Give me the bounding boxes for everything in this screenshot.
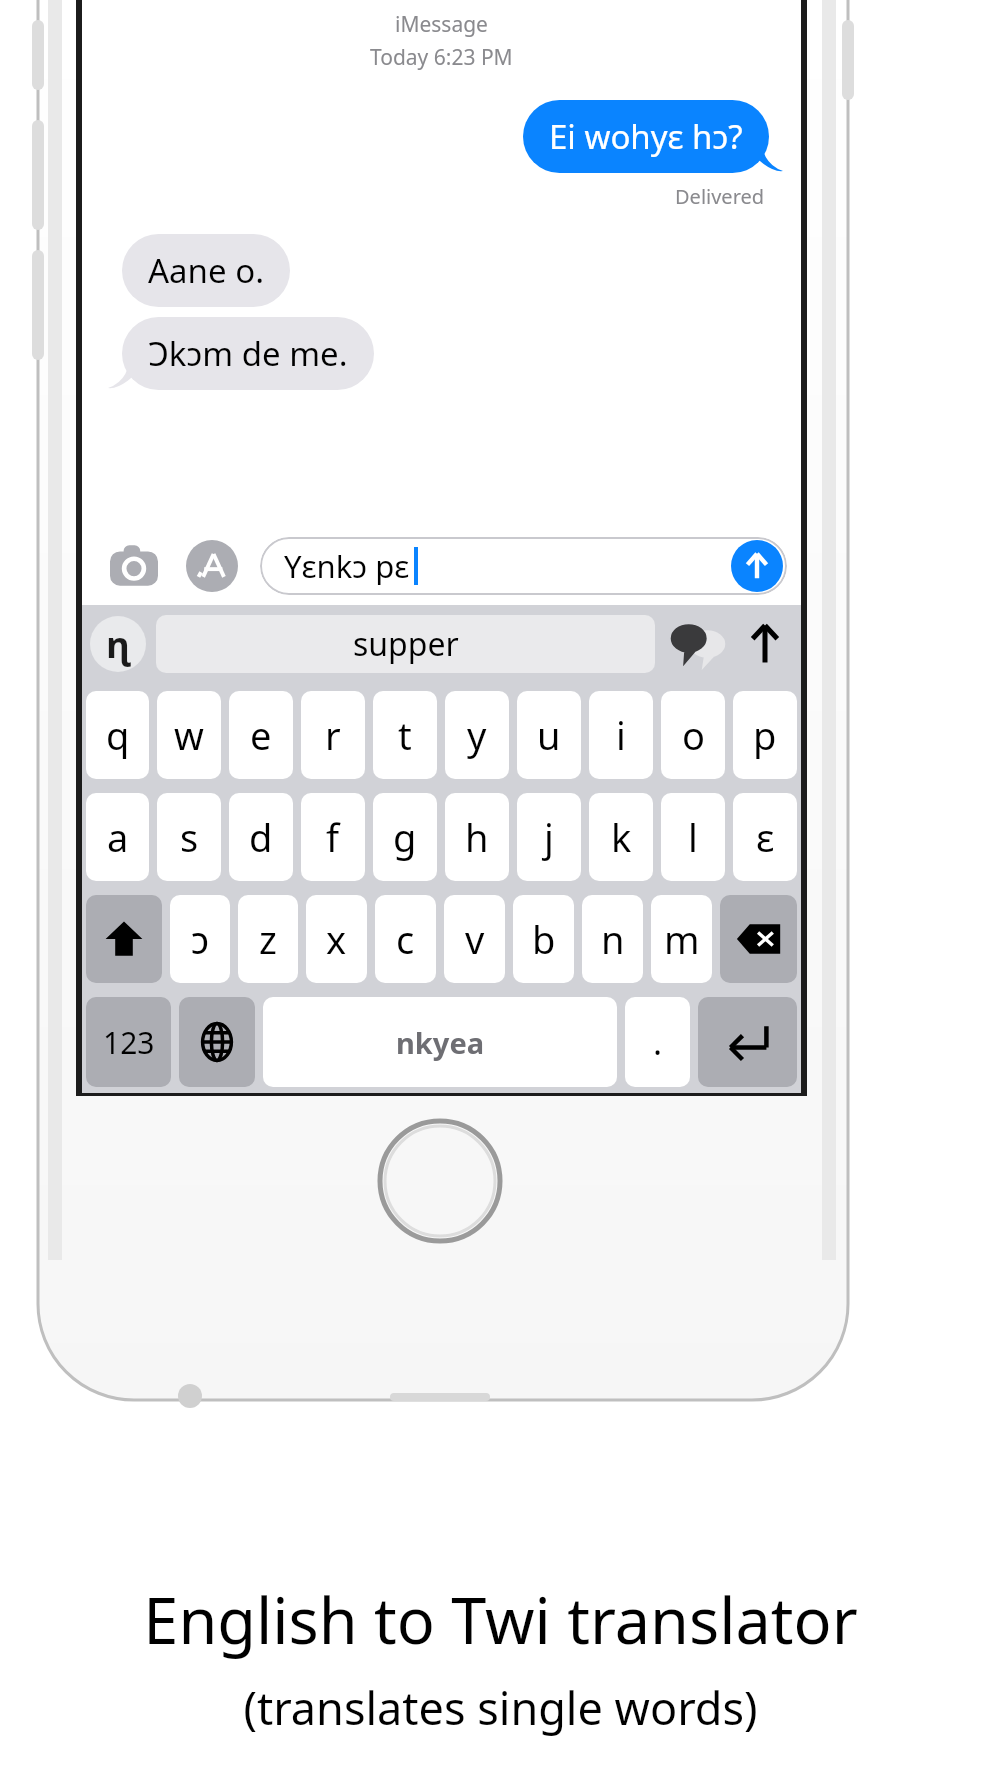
button[interactable]: Backspace bbox=[720, 895, 797, 983]
staticText: Ei wohyɛ hɔ? bbox=[549, 114, 743, 159]
button[interactable]: z bbox=[238, 895, 298, 983]
button[interactable]: l bbox=[661, 793, 725, 881]
staticText: Yɛnkɔ pɛ bbox=[284, 545, 410, 587]
button[interactable]: 123 bbox=[86, 997, 171, 1087]
button[interactable]: Switch keyboard bbox=[179, 997, 255, 1087]
button[interactable]: y bbox=[445, 691, 509, 779]
button[interactable]: v bbox=[444, 895, 505, 983]
button[interactable]: Ɔkɔm de me. bbox=[122, 317, 374, 390]
staticText: p bbox=[753, 709, 777, 761]
staticText: f bbox=[326, 811, 340, 863]
staticText: ɳ bbox=[106, 620, 130, 669]
staticText: (translates single words) bbox=[243, 1677, 758, 1738]
staticText: English to Twi translator bbox=[143, 1577, 858, 1663]
staticText: supper bbox=[353, 622, 459, 666]
staticText: a bbox=[107, 811, 129, 863]
staticText: n bbox=[601, 913, 625, 965]
staticText: z bbox=[259, 913, 277, 965]
staticText: Today 6:23 PM bbox=[370, 43, 513, 72]
button[interactable]: nkyea bbox=[263, 997, 617, 1087]
button[interactable]: Aane o. bbox=[122, 234, 290, 307]
staticText: iMessage bbox=[395, 10, 488, 39]
staticText: w bbox=[174, 709, 204, 761]
staticText: Delivered bbox=[675, 183, 765, 210]
button[interactable]: supper bbox=[156, 615, 655, 673]
button[interactable]: Return bbox=[698, 997, 797, 1087]
staticText: k bbox=[611, 811, 632, 863]
button[interactable]: u bbox=[517, 691, 581, 779]
staticText: l bbox=[688, 811, 698, 863]
staticText: g bbox=[393, 811, 417, 863]
button[interactable]: x bbox=[306, 895, 367, 983]
button[interactable]: Shift bbox=[86, 895, 162, 983]
staticText: Ɔkɔm de me. bbox=[148, 331, 348, 376]
staticText: b bbox=[532, 913, 556, 965]
button[interactable]: ɔ bbox=[170, 895, 230, 983]
button[interactable]: Camera bbox=[108, 540, 160, 592]
button[interactable]: r bbox=[301, 691, 365, 779]
button[interactable]: Ei wohyɛ hɔ? bbox=[523, 100, 769, 173]
button[interactable]: a bbox=[86, 793, 149, 881]
staticText: i bbox=[616, 709, 626, 761]
button[interactable]: . bbox=[625, 997, 690, 1087]
staticText: o bbox=[682, 709, 705, 761]
staticText: e bbox=[250, 709, 272, 761]
staticText: m bbox=[664, 913, 700, 965]
staticText: . bbox=[653, 1019, 663, 1065]
button[interactable]: o bbox=[661, 691, 725, 779]
staticText: d bbox=[249, 811, 273, 863]
staticText: y bbox=[467, 709, 487, 761]
staticText: r bbox=[325, 709, 341, 761]
staticText: ɔ bbox=[191, 913, 210, 965]
staticText: ɛ bbox=[756, 811, 775, 863]
staticText: t bbox=[398, 709, 412, 761]
staticText: nkyea bbox=[396, 1023, 485, 1062]
button[interactable]: f bbox=[301, 793, 365, 881]
button[interactable]: d bbox=[229, 793, 293, 881]
button[interactable]: w bbox=[157, 691, 221, 779]
staticText: v bbox=[465, 913, 485, 965]
button[interactable]: Expand bbox=[737, 616, 793, 672]
button[interactable]: h bbox=[445, 793, 509, 881]
button[interactable]: c bbox=[375, 895, 436, 983]
button[interactable]: j bbox=[517, 793, 581, 881]
button[interactable]: Send bbox=[731, 540, 783, 592]
button[interactable]: e bbox=[229, 691, 293, 779]
button[interactable]: s bbox=[157, 793, 221, 881]
staticText: Aane o. bbox=[148, 248, 264, 293]
button[interactable]: p bbox=[733, 691, 797, 779]
staticText: j bbox=[544, 811, 554, 863]
button[interactable]: b bbox=[513, 895, 574, 983]
button[interactable]: n bbox=[582, 895, 643, 983]
button[interactable]: m bbox=[651, 895, 712, 983]
staticText: q bbox=[106, 709, 130, 761]
button[interactable]: t bbox=[373, 691, 437, 779]
button[interactable]: Keyboard logo bbox=[90, 616, 146, 672]
button[interactable]: App Store bbox=[186, 540, 238, 592]
button[interactable]: k bbox=[589, 793, 653, 881]
button[interactable]: i bbox=[589, 691, 653, 779]
staticText: x bbox=[326, 913, 347, 965]
staticText: h bbox=[465, 811, 489, 863]
staticText: s bbox=[180, 811, 199, 863]
staticText: u bbox=[537, 709, 561, 761]
button[interactable]: ɛ bbox=[733, 793, 797, 881]
button[interactable]: Predictions bbox=[667, 613, 729, 675]
staticText: c bbox=[396, 913, 415, 965]
staticText: 123 bbox=[103, 1022, 155, 1063]
button[interactable]: Yɛnkɔ pɛ bbox=[260, 537, 787, 595]
button[interactable]: q bbox=[86, 691, 149, 779]
button[interactable]: g bbox=[373, 793, 437, 881]
